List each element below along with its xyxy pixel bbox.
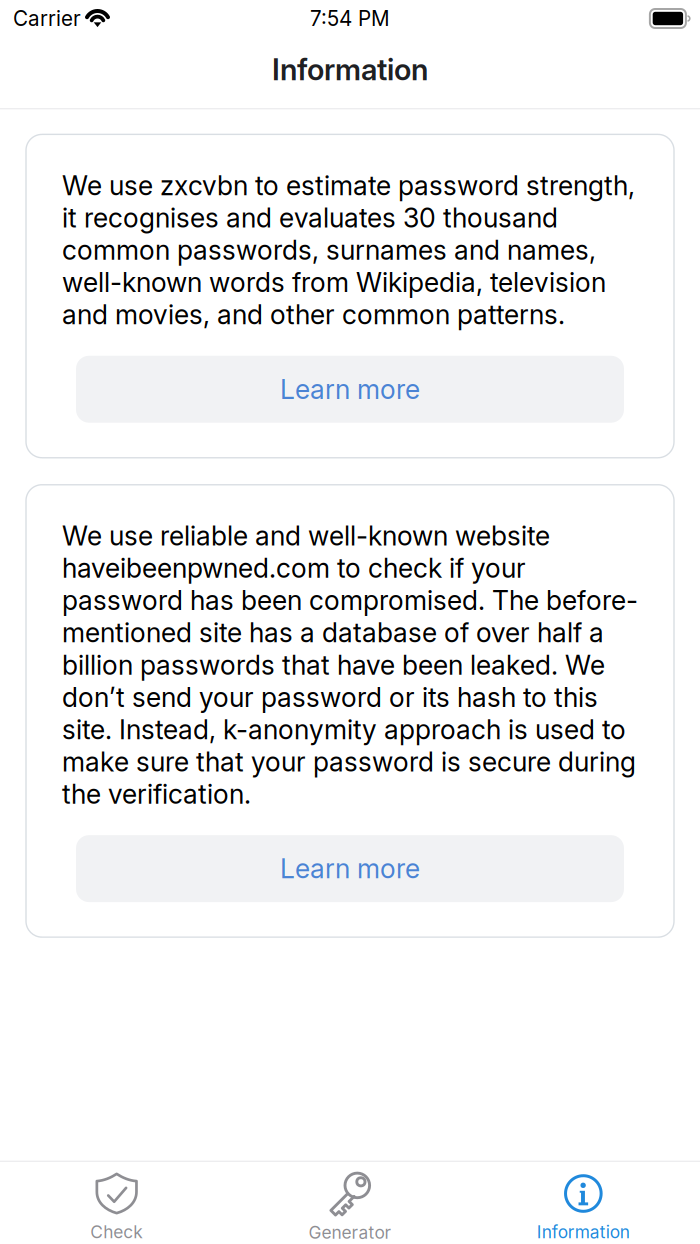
- staticText: 7:54 PM: [310, 6, 390, 31]
- staticText: We use reliable and well-known website h…: [62, 520, 638, 810]
- button[interactable]: Check: [0, 1160, 233, 1244]
- staticText: Learn more: [280, 373, 420, 405]
- button[interactable]: Learn more: [76, 356, 624, 423]
- staticText: Generator: [308, 1222, 391, 1243]
- button[interactable]: Learn more: [76, 835, 624, 902]
- staticText: Information: [537, 1221, 630, 1242]
- button[interactable]: Generator: [233, 1160, 467, 1244]
- staticText: Learn more: [280, 852, 420, 885]
- staticText: Check: [90, 1221, 143, 1242]
- staticText: Carrier: [13, 6, 81, 31]
- staticText: We use zxcvbn to estimate password stren…: [62, 169, 635, 331]
- button[interactable]: Information: [467, 1160, 700, 1244]
- staticText: Information: [272, 52, 428, 87]
